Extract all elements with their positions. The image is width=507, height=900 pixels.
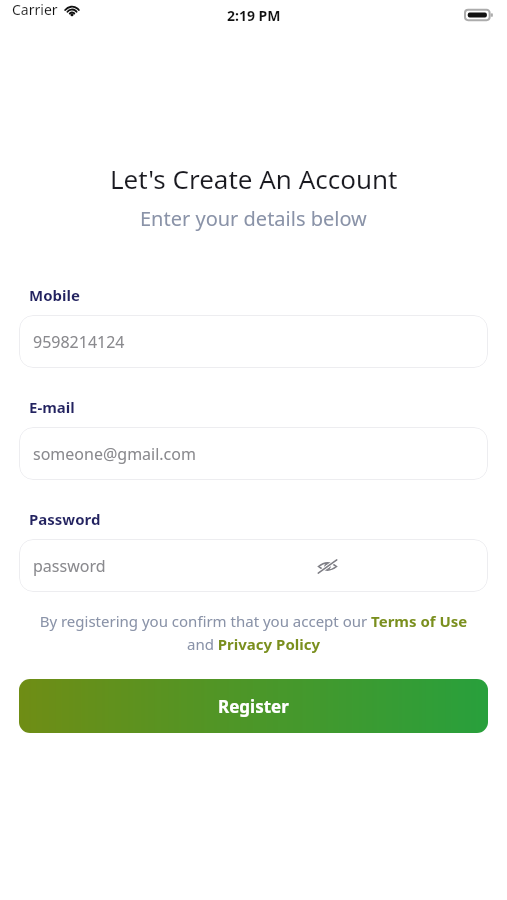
staticText: Let's Create An Account	[110, 161, 398, 196]
button[interactable]: Register	[19, 679, 488, 733]
staticText: password	[33, 555, 106, 577]
staticText: Password	[29, 509, 101, 529]
staticText: By registering you confirm that you acce…	[28, 611, 479, 654]
button[interactable]: someone@gmail.com	[19, 427, 488, 480]
staticText: 9598214124	[33, 331, 125, 353]
button[interactable]: 9598214124	[19, 315, 488, 368]
staticText: Register	[218, 695, 289, 718]
button[interactable]: By registering you confirm that you acce…	[28, 611, 479, 654]
button[interactable]: password	[19, 539, 488, 592]
staticText: Carrier	[12, 0, 58, 19]
staticText: E-mail	[29, 397, 75, 417]
staticText: someone@gmail.com	[33, 443, 196, 465]
staticText: Mobile	[29, 285, 80, 305]
staticText: Enter your details below	[140, 205, 367, 232]
button[interactable]: Show password	[314, 553, 340, 579]
staticText: 2:19 PM	[227, 6, 281, 25]
